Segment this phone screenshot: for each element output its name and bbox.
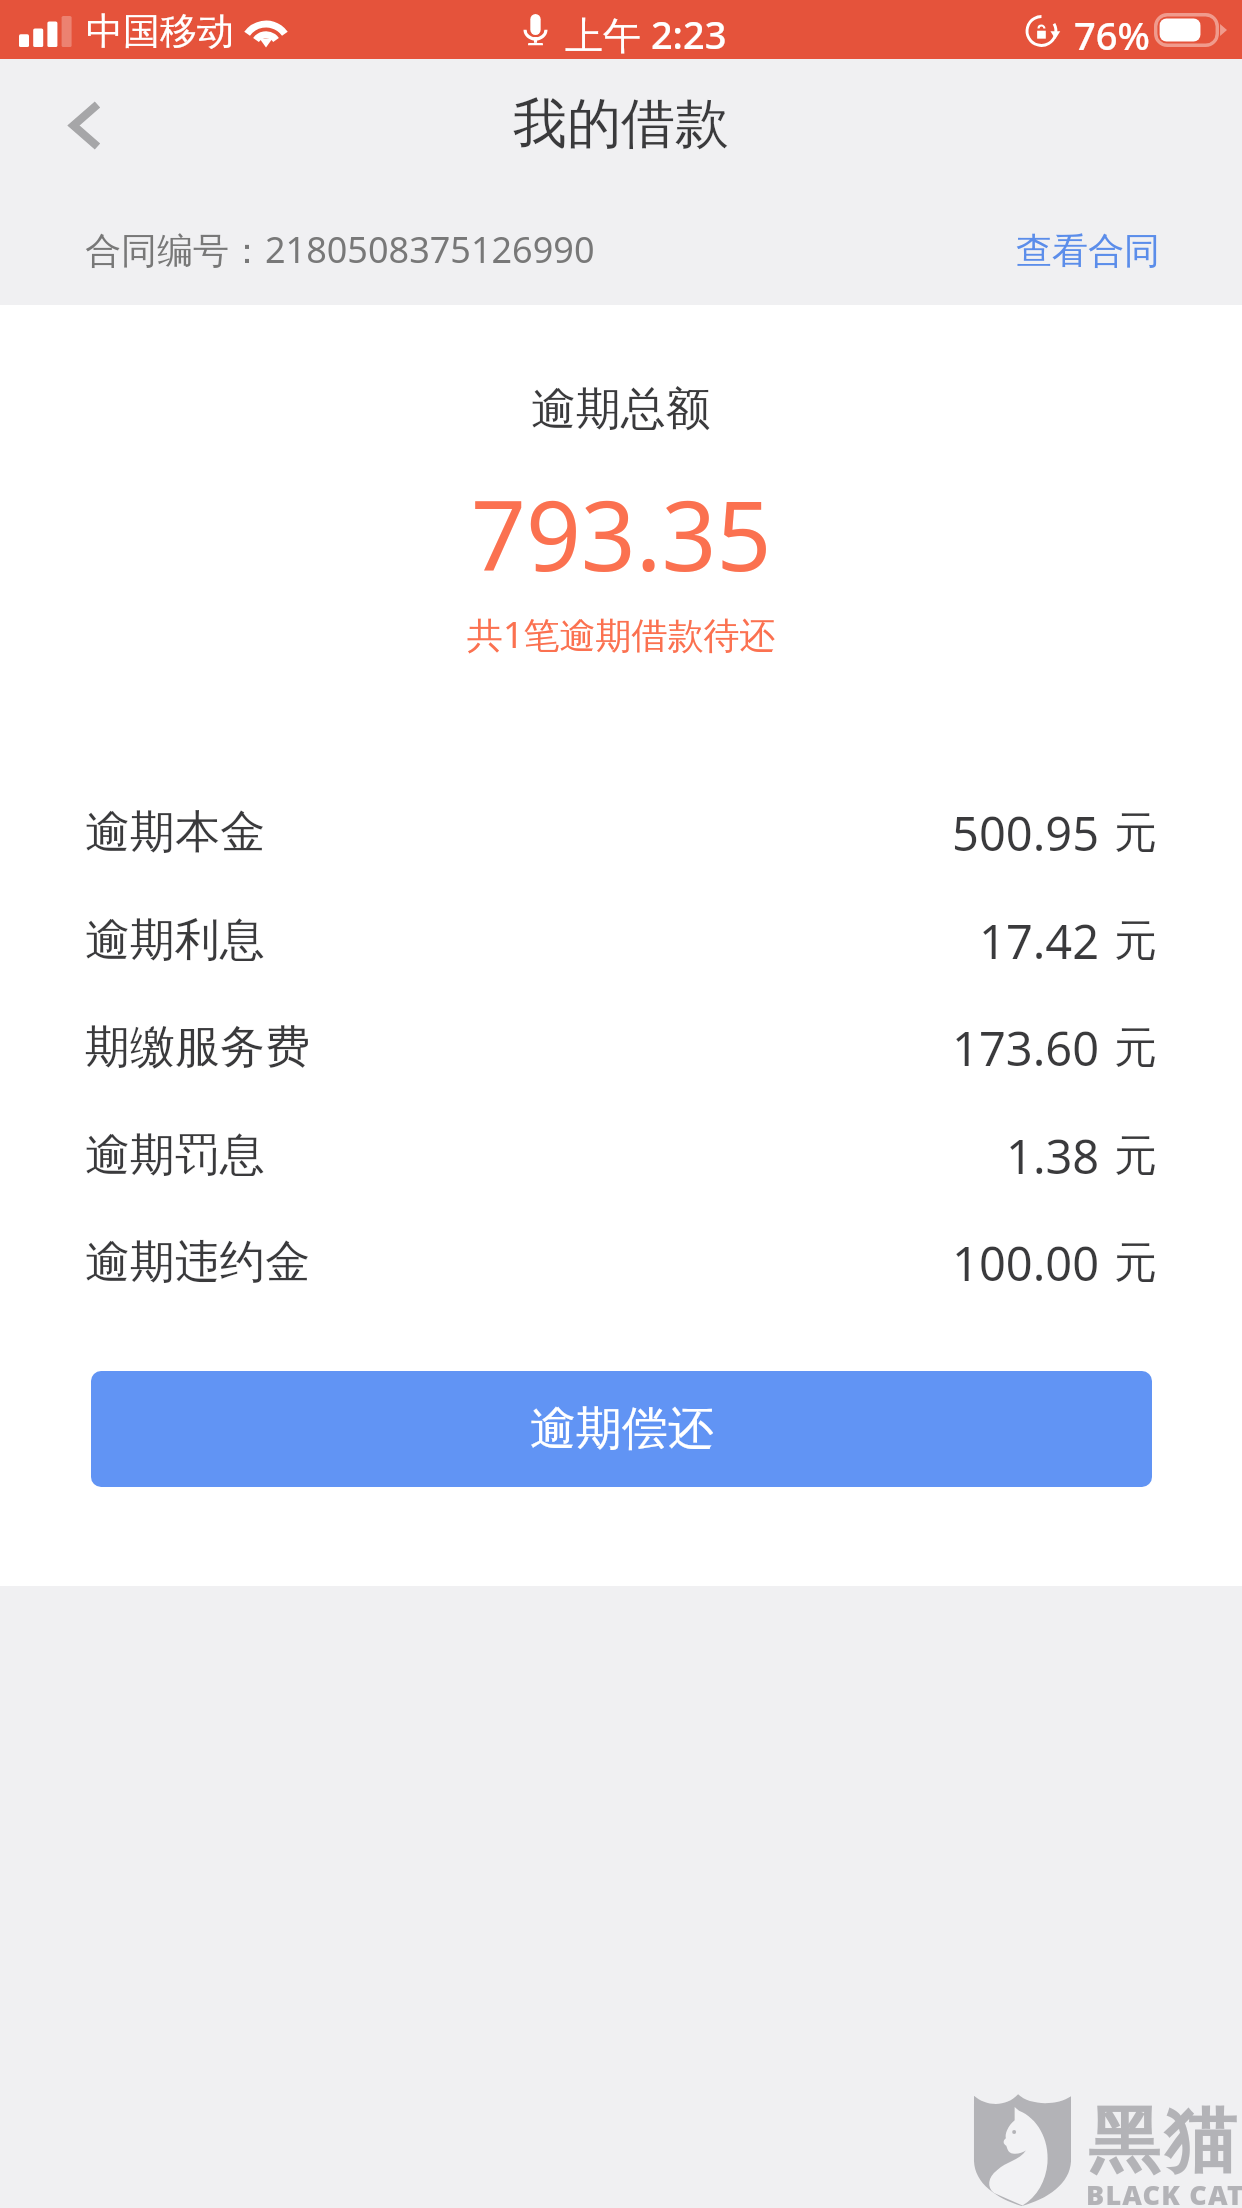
button[interactable]: 逾期偿还	[91, 1371, 1152, 1487]
staticText: 黑猫	[1086, 2096, 1238, 2187]
staticText: 中国移动	[86, 8, 234, 55]
staticText: 逾期总额	[531, 381, 711, 438]
staticText: 1.38	[1006, 1124, 1100, 1188]
staticText: BLACK CAT	[1086, 2176, 1242, 2208]
staticText: 元	[1114, 914, 1157, 968]
staticText: 100.00	[952, 1231, 1100, 1295]
staticText: 查看合同	[1016, 228, 1160, 273]
staticText: 500.95	[952, 801, 1100, 865]
staticText: 元	[1114, 1021, 1157, 1075]
staticText: 173.60	[952, 1016, 1100, 1080]
staticText: 元	[1114, 1236, 1157, 1290]
staticText: 逾期本金	[85, 804, 265, 861]
button[interactable]: Back	[0, 59, 130, 191]
staticText: 逾期违约金	[85, 1234, 310, 1291]
staticText: 76%	[1074, 9, 1150, 61]
staticText: 合同编号：2180508375126990	[85, 225, 595, 274]
staticText: 元	[1114, 1129, 1157, 1183]
staticText: 逾期罚息	[85, 1127, 265, 1184]
staticText: 逾期偿还	[530, 1400, 714, 1458]
button[interactable]: 查看合同	[992, 210, 1242, 287]
staticText: 793.35	[471, 468, 772, 599]
staticText: 上午 2:23	[565, 8, 727, 60]
staticText: 共1笔逾期借款待还	[467, 610, 776, 659]
staticText: 17.42	[979, 909, 1100, 973]
staticText: 我的借款	[513, 90, 729, 158]
staticText: 元	[1114, 806, 1157, 860]
staticText: 逾期利息	[85, 912, 265, 969]
staticText: 期缴服务费	[85, 1019, 310, 1076]
